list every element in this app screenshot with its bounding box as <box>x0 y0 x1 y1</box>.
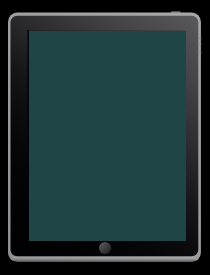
button[interactable]: Home <box>99 242 111 254</box>
button[interactable]: Volume up <box>198 36 202 41</box>
button[interactable]: Mute <box>198 50 202 55</box>
button[interactable]: Power <box>171 11 181 16</box>
button[interactable]: Volume down <box>198 42 202 47</box>
